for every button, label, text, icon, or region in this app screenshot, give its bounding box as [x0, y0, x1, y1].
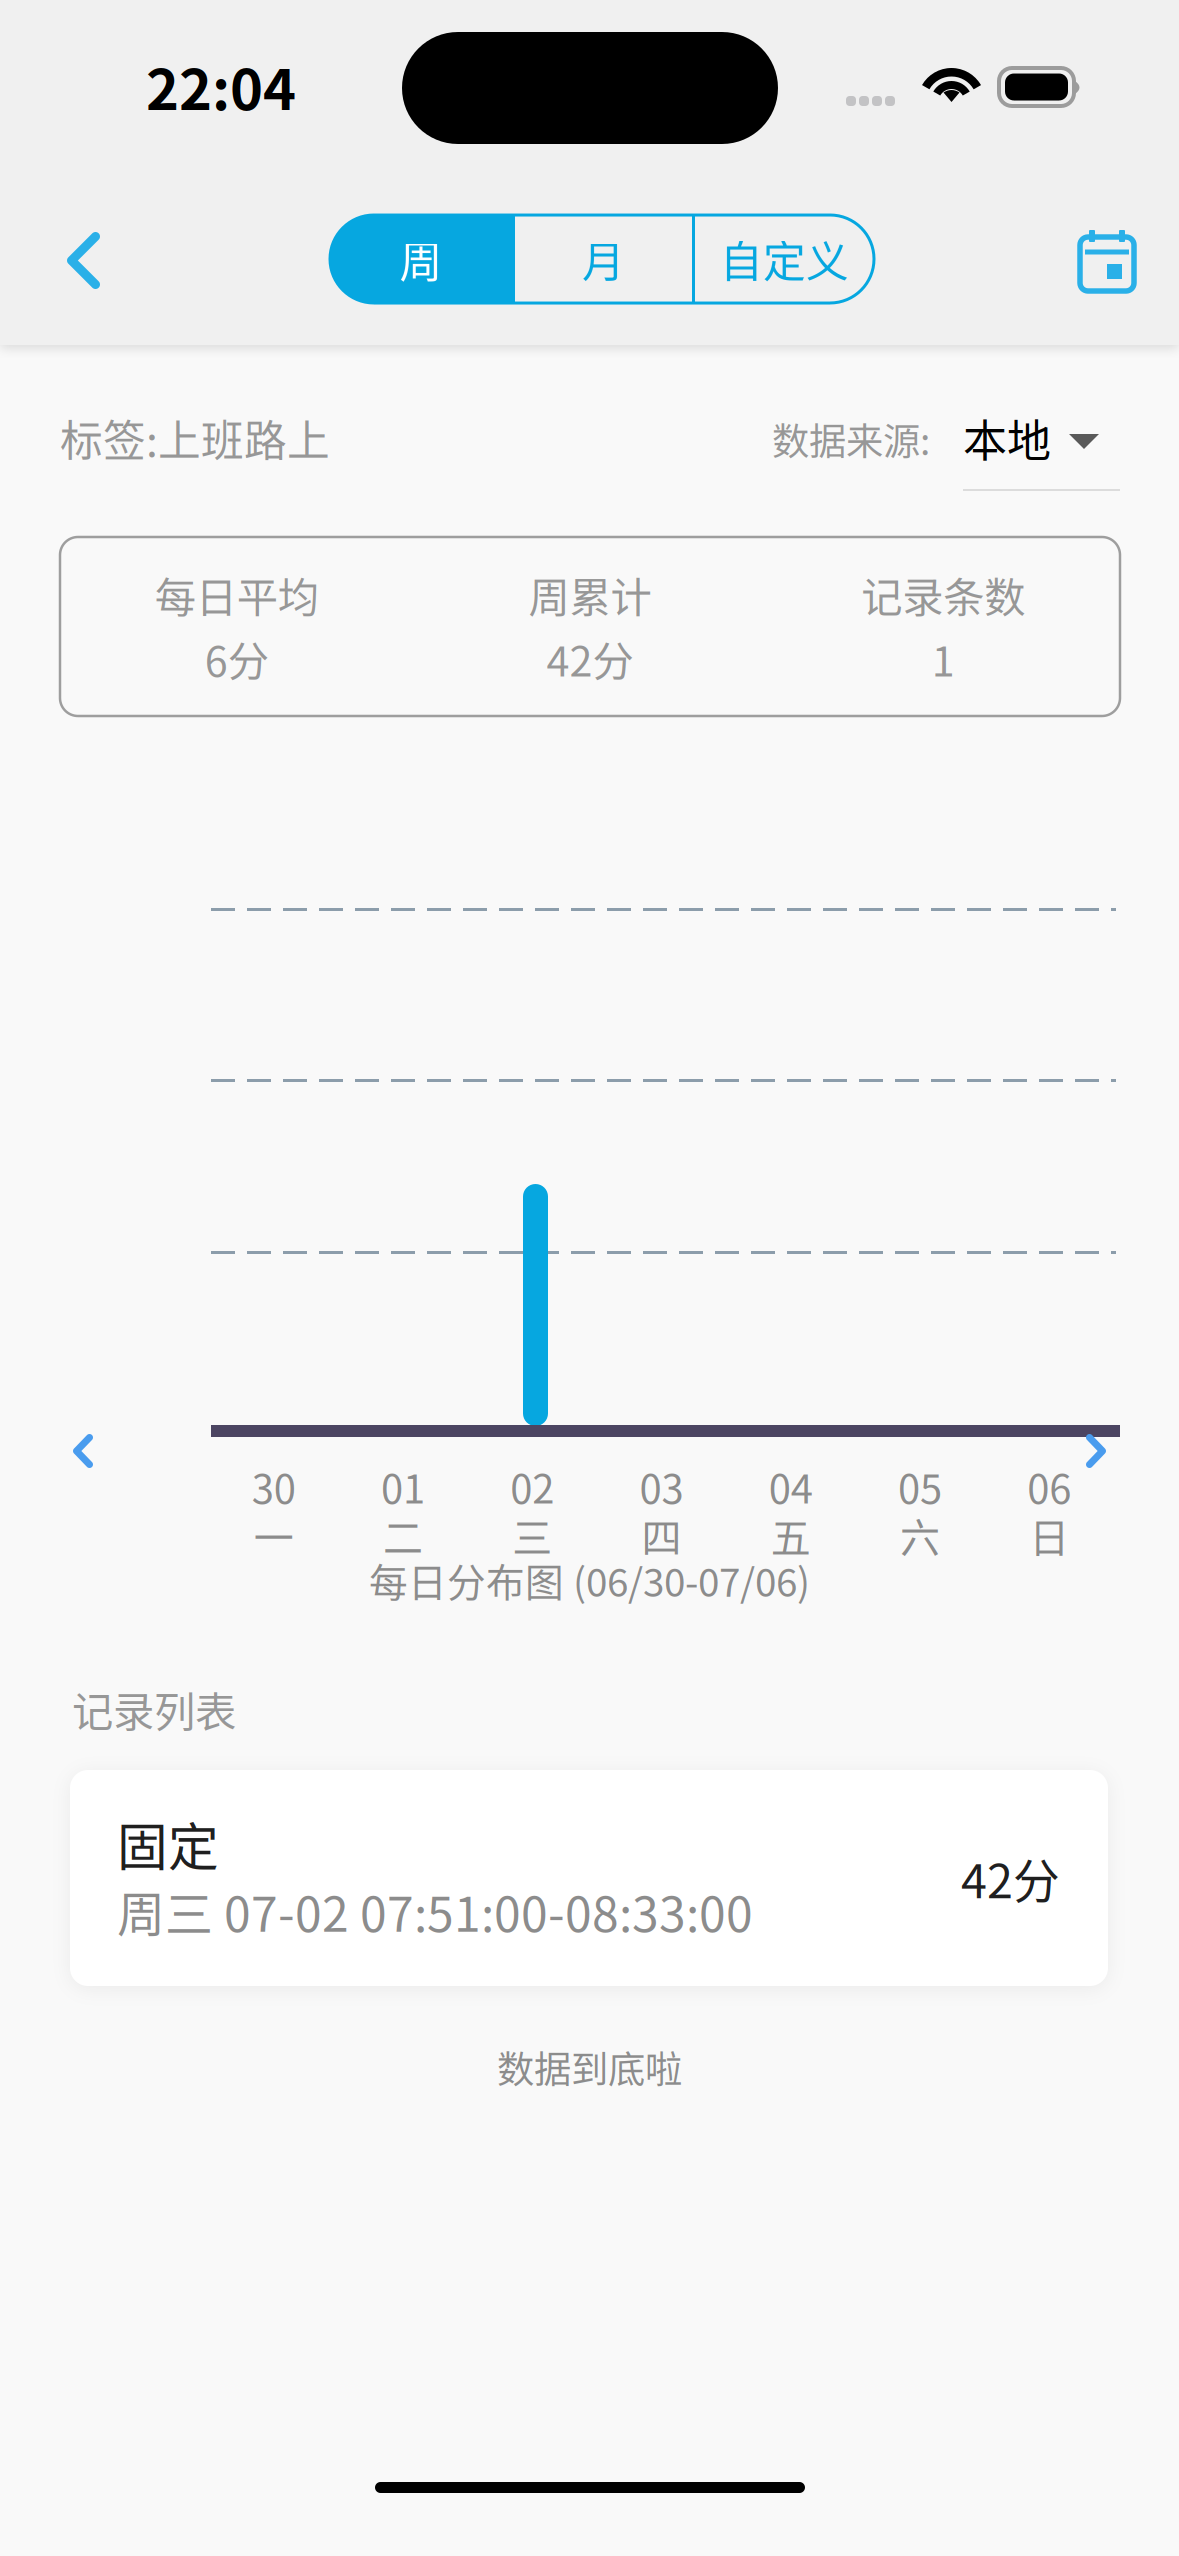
button[interactable]: 固定	[70, 1770, 1108, 1986]
staticText: 30	[252, 1457, 296, 1515]
staticText: 02	[510, 1457, 554, 1515]
staticText: 06	[1027, 1457, 1071, 1515]
button[interactable]: 本地	[963, 406, 1120, 491]
staticText: 二	[383, 1506, 423, 1564]
button[interactable]: Previous week	[53, 1414, 113, 1488]
staticText: 周累计	[528, 565, 651, 624]
staticText: 日	[1029, 1506, 1069, 1564]
staticText: 6分	[205, 628, 269, 688]
staticText: 05	[898, 1457, 942, 1515]
staticText: 01	[381, 1457, 425, 1515]
staticText: 标签:上班路上	[60, 407, 330, 469]
staticText: 固定	[117, 1807, 219, 1880]
button[interactable]: Back	[33, 198, 134, 323]
staticText: 42分	[546, 628, 633, 688]
staticText: 数据到底啦	[497, 2040, 682, 2094]
staticText: 记录条数	[861, 565, 1025, 624]
staticText: 周三 07-02 07:51:00-08:33:00	[117, 1876, 753, 1945]
staticText: 每日平均	[155, 565, 319, 624]
staticText: 03	[639, 1457, 683, 1515]
button[interactable]: Next week	[1066, 1414, 1126, 1488]
staticText: 42分	[961, 1844, 1060, 1912]
button[interactable]: Calendar	[1052, 202, 1162, 319]
staticText: 记录列表	[72, 1679, 236, 1739]
staticText: 五	[771, 1506, 811, 1564]
button[interactable]: 月	[512, 215, 695, 303]
staticText: 22:04	[146, 45, 296, 126]
staticText: 月	[582, 228, 625, 290]
staticText: 三	[512, 1506, 552, 1564]
button[interactable]: 自定义	[695, 215, 874, 303]
staticText: 数据来源:	[772, 412, 930, 466]
staticText: 自定义	[720, 228, 849, 290]
staticText: 本地	[963, 406, 1051, 470]
staticText: 六	[900, 1506, 940, 1564]
button[interactable]: 周	[330, 215, 512, 303]
staticText: 周	[399, 228, 442, 290]
staticText: 1	[932, 628, 955, 688]
staticText: 每日分布图 (06/30-07/06)	[369, 1552, 810, 1608]
staticText: 四	[641, 1506, 681, 1564]
staticText: 04	[769, 1457, 813, 1515]
staticText: 一	[254, 1506, 294, 1564]
